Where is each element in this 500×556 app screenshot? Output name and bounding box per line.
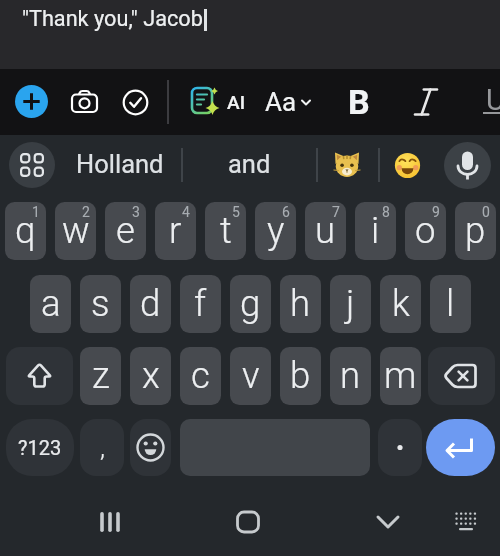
button[interactable] xyxy=(6,347,73,405)
staticText: o xyxy=(415,209,436,252)
staticText: l xyxy=(446,282,455,325)
button[interactable]: Aa xyxy=(221,77,341,127)
staticText: 3 xyxy=(132,204,140,220)
button[interactable]: v xyxy=(230,347,271,405)
button[interactable]: f xyxy=(180,275,221,333)
button[interactable] xyxy=(394,152,421,179)
staticText: x xyxy=(142,354,160,397)
button[interactable]: ?123 xyxy=(6,419,74,476)
staticText: k xyxy=(392,282,410,325)
button[interactable] xyxy=(15,85,48,118)
button[interactable] xyxy=(228,505,268,539)
button[interactable]: b xyxy=(280,347,321,405)
button[interactable] xyxy=(368,505,408,539)
button[interactable]: , xyxy=(80,419,124,476)
button[interactable] xyxy=(9,142,55,188)
staticText: v xyxy=(242,354,260,397)
staticText: z xyxy=(92,354,110,397)
staticText: p xyxy=(465,209,486,252)
button[interactable]: p xyxy=(455,202,496,260)
staticText: ?123 xyxy=(18,436,62,459)
staticText: m xyxy=(384,354,417,397)
staticText: 7 xyxy=(332,204,340,220)
staticText: 2 xyxy=(82,204,90,220)
staticText: c xyxy=(191,354,210,397)
button[interactable]: g xyxy=(230,275,271,333)
staticText: B xyxy=(348,82,370,122)
button[interactable]: x xyxy=(130,347,171,405)
button[interactable] xyxy=(130,419,171,476)
button[interactable]: AI xyxy=(176,77,296,127)
button[interactable]: Holland xyxy=(60,139,180,189)
button[interactable]: w xyxy=(55,202,96,260)
staticText: 9 xyxy=(432,204,440,220)
staticText: e xyxy=(116,209,135,252)
button[interactable] xyxy=(448,505,484,539)
staticText: t xyxy=(220,209,232,252)
button[interactable]: i xyxy=(355,202,396,260)
staticText: r xyxy=(169,209,182,252)
staticText: 1 xyxy=(32,204,40,220)
button[interactable]: j xyxy=(330,275,371,333)
button[interactable]: r xyxy=(155,202,196,260)
button[interactable] xyxy=(90,505,130,539)
staticText: 6 xyxy=(282,204,290,220)
staticText: w xyxy=(62,209,90,252)
button[interactable] xyxy=(188,84,222,120)
button[interactable]: d xyxy=(130,275,171,333)
button[interactable]: k xyxy=(380,275,421,333)
button[interactable]: a xyxy=(30,275,71,333)
button[interactable]: y xyxy=(255,202,296,260)
staticText: 8 xyxy=(382,204,390,220)
staticText: 5 xyxy=(232,204,240,220)
staticText: n xyxy=(340,354,361,397)
staticText: y xyxy=(267,209,285,252)
button[interactable] xyxy=(408,84,444,120)
button[interactable] xyxy=(428,347,495,405)
button[interactable]: u xyxy=(305,202,346,260)
staticText: Holland xyxy=(76,149,164,179)
button[interactable]: h xyxy=(280,275,321,333)
staticText: , xyxy=(100,432,105,462)
staticText: s xyxy=(91,282,110,325)
button[interactable]: m xyxy=(380,347,421,405)
button[interactable]: n xyxy=(330,347,371,405)
button[interactable]: and xyxy=(189,139,309,189)
staticText: U xyxy=(486,83,500,117)
staticText: a xyxy=(41,282,61,325)
button[interactable]: z xyxy=(80,347,121,405)
button[interactable] xyxy=(444,142,491,189)
staticText: i xyxy=(371,209,380,252)
staticText: and xyxy=(228,149,271,179)
button[interactable]: e xyxy=(105,202,146,260)
staticText: "Thank you," Jacob xyxy=(22,6,203,31)
staticText: f xyxy=(194,282,207,325)
staticText: AI xyxy=(227,91,246,113)
staticText: h xyxy=(290,282,311,325)
button[interactable] xyxy=(333,151,361,179)
button[interactable] xyxy=(0,0,500,69)
button[interactable] xyxy=(68,86,101,119)
button[interactable]: l xyxy=(430,275,471,333)
staticText: d xyxy=(140,282,161,325)
button[interactable] xyxy=(426,419,495,476)
button[interactable]: q xyxy=(5,202,46,260)
button[interactable] xyxy=(378,419,422,476)
staticText: j xyxy=(346,282,355,325)
button[interactable]: s xyxy=(80,275,121,333)
button[interactable]: o xyxy=(405,202,446,260)
staticText: 0 xyxy=(482,204,490,220)
staticText: b xyxy=(290,354,311,397)
staticText: u xyxy=(315,209,336,252)
button[interactable]: t xyxy=(205,202,246,260)
button[interactable]: B xyxy=(299,77,419,127)
button[interactable]: c xyxy=(180,347,221,405)
button[interactable] xyxy=(119,86,152,119)
staticText: q xyxy=(15,209,36,252)
staticText: Aa xyxy=(265,87,297,117)
staticText: g xyxy=(240,282,261,325)
staticText: 4 xyxy=(182,204,190,220)
